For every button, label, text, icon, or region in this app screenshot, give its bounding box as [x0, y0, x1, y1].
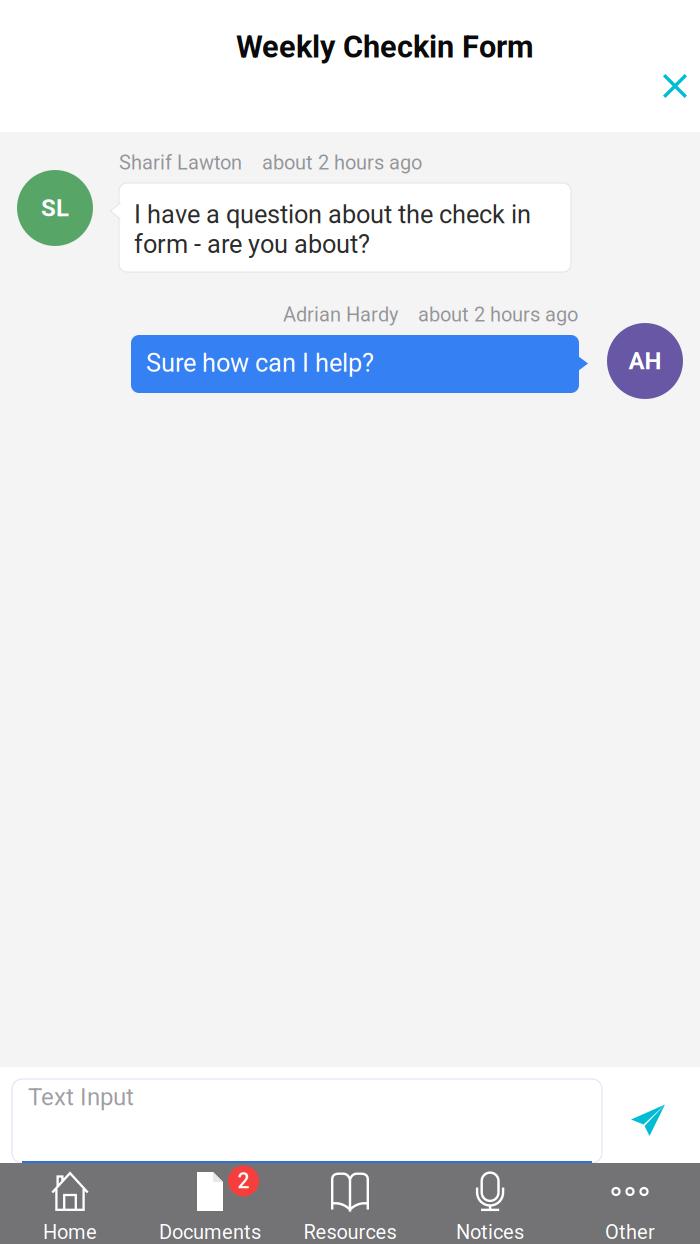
staticText: Sharif Lawton about 2 hours ago — [119, 151, 422, 174]
staticText: 2 — [237, 1168, 249, 1193]
staticText: Other — [605, 1220, 655, 1244]
staticText: Weekly Checkin Form — [236, 29, 534, 65]
staticText: Documents — [159, 1220, 261, 1244]
button[interactable]: Home — [0, 1163, 140, 1243]
staticText: Adrian Hardy about 2 hours ago — [283, 303, 578, 326]
button[interactable]: Other — [560, 1163, 700, 1243]
button[interactable]: Resources — [280, 1163, 420, 1243]
button[interactable]: Text Input — [12, 1079, 602, 1163]
staticText: AH — [628, 347, 661, 375]
staticText: Sure how can I help? — [146, 348, 374, 378]
button[interactable]: Close — [651, 62, 699, 110]
staticText: Resources — [303, 1220, 396, 1244]
staticText: I have a question about the check in for… — [134, 200, 531, 259]
staticText: SL — [41, 194, 69, 222]
staticText: Home — [43, 1220, 97, 1244]
staticText: Notices — [456, 1220, 524, 1244]
button[interactable]: Send — [626, 1098, 670, 1142]
staticText: Text Input — [28, 1083, 134, 1111]
button[interactable]: Notices — [420, 1163, 560, 1243]
button[interactable]: 2 — [140, 1163, 280, 1243]
